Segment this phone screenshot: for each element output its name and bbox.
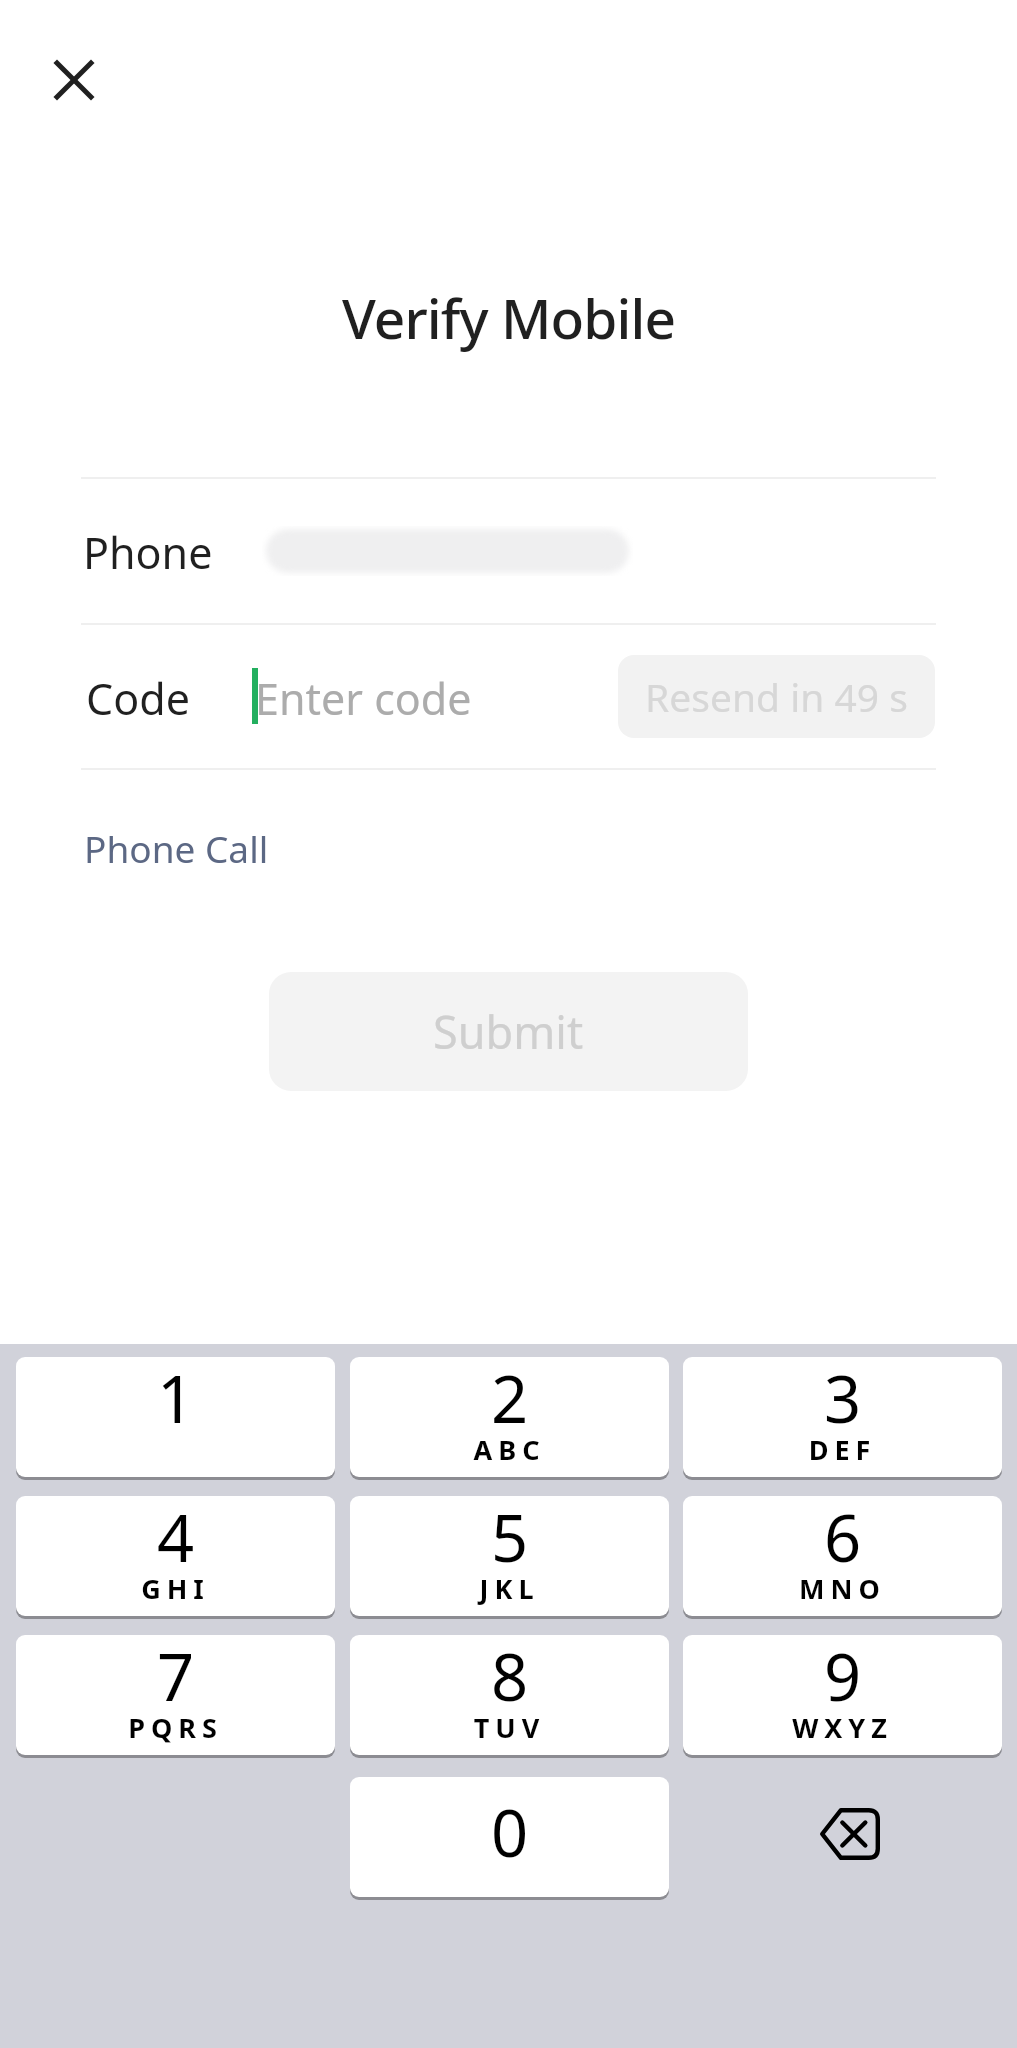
staticText: TUV [350,1709,669,1746]
staticText: ABC [350,1431,669,1468]
staticText: PQRS [16,1709,335,1746]
staticText: 8 [350,1635,669,1721]
button[interactable]: Submit [269,972,748,1091]
button[interactable]: 1 [16,1357,335,1477]
button[interactable]: 3 [683,1357,1002,1477]
staticText: Code [86,669,190,728]
staticText: Enter code [255,669,472,728]
staticText: DEF [683,1431,1002,1468]
button[interactable]: 4 [16,1496,335,1616]
button[interactable]: 0 [350,1777,669,1897]
staticText: MNO [683,1570,1002,1607]
staticText: WXYZ [683,1709,1002,1746]
button[interactable]: 9 [683,1635,1002,1755]
staticText: Phone Call [84,823,269,873]
staticText: 3 [683,1357,1002,1443]
button[interactable]: 5 [350,1496,669,1616]
button[interactable]: Phone Call [76,815,277,881]
staticText: Phone [83,523,213,582]
staticText: 1 [16,1357,335,1443]
button[interactable]: 8 [350,1635,669,1755]
staticText: GHI [16,1570,335,1607]
staticText: 0 [350,1788,669,1877]
staticText: 9 [683,1635,1002,1721]
staticText: 6 [683,1496,1002,1582]
staticText: 5 [350,1496,669,1582]
staticText: 4 [16,1496,335,1582]
button[interactable]: 7 [16,1635,335,1755]
staticText: 2 [350,1357,669,1443]
staticText: Submit [433,1001,584,1062]
button[interactable]: 6 [683,1496,1002,1616]
staticText: 7 [16,1635,335,1721]
staticText: Verify Mobile [0,280,1017,355]
staticText: JKL [350,1570,669,1607]
button[interactable]: Resend in 49 s [618,655,935,738]
staticText: Resend in 49 s [645,670,908,723]
button[interactable]: Delete [683,1777,1002,1897]
button[interactable]: Close [32,38,116,122]
button[interactable]: 2 [350,1357,669,1477]
